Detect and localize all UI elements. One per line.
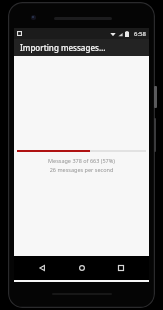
button[interactable]: Recent apps <box>110 257 132 279</box>
button[interactable]: Importing messages… <box>14 39 149 56</box>
staticText: Importing messages… <box>20 42 106 53</box>
button[interactable]: Back <box>31 257 53 279</box>
staticText: 26 messages per second <box>14 166 149 173</box>
button[interactable]: Home <box>71 257 93 279</box>
staticText: 6:58 <box>134 30 146 38</box>
staticText: Message 378 of 663 (57%) <box>14 157 149 164</box>
